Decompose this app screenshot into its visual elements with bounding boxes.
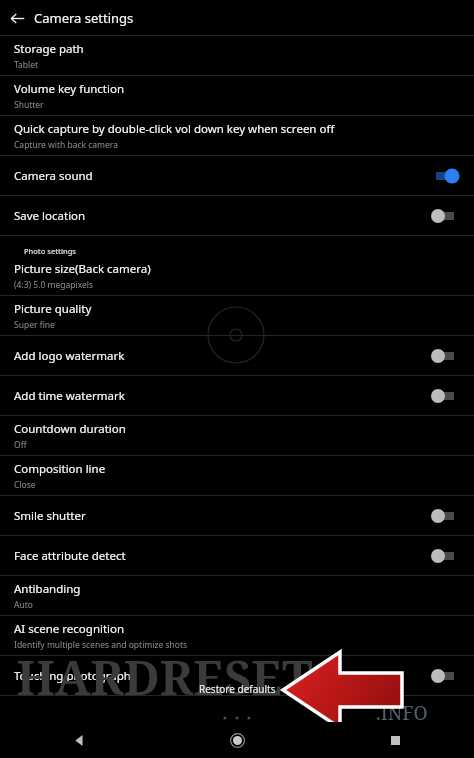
button[interactable]: Smile shutter: [0, 496, 474, 535]
button[interactable]: Restore defaults: [0, 678, 474, 700]
staticText: (4:3) 5.0 megapixels: [14, 279, 94, 291]
staticText: Picture size(Back camera): [14, 261, 151, 277]
button[interactable]: AI scene recognition: [0, 616, 474, 655]
button[interactable]: Antibanding: [0, 576, 474, 615]
button[interactable]: Quick capture by double-click vol down k…: [0, 116, 474, 155]
button[interactable]: Save location: [0, 196, 474, 235]
staticText: Storage path: [14, 41, 84, 57]
staticText: Save location: [14, 208, 86, 224]
button[interactable]: Storage path: [0, 36, 474, 75]
staticText: Restore defaults: [199, 682, 276, 696]
staticText: AI scene recognition: [14, 621, 125, 637]
staticText: Shutter: [14, 99, 44, 111]
staticText: Touching photograph: [14, 668, 131, 684]
button[interactable]: Home: [158, 722, 316, 758]
staticText: Add time watermark: [14, 388, 125, 404]
button[interactable]: Face attribute detect: [0, 536, 474, 575]
staticText: Composition line: [14, 461, 106, 477]
staticText: Countdown duration: [14, 421, 126, 437]
staticText: Off: [14, 439, 27, 451]
staticText: Camera settings: [34, 9, 134, 27]
button[interactable]: Picture size(Back camera): [0, 256, 474, 295]
button[interactable]: Volume key function: [0, 76, 474, 115]
button[interactable]: Composition line: [0, 456, 474, 495]
staticText: Close: [14, 479, 36, 491]
button[interactable]: Add logo watermark: [0, 336, 474, 375]
staticText: Auto: [14, 599, 33, 611]
button[interactable]: Recent apps: [316, 722, 474, 758]
staticText: Smile shutter: [14, 508, 86, 524]
staticText: .INFO: [376, 700, 428, 726]
staticText: Capture with back camera: [14, 139, 118, 151]
staticText: Tablet: [14, 59, 39, 71]
staticText: Quick capture by double-click vol down k…: [14, 121, 335, 137]
button[interactable]: Touching photograph: [0, 656, 474, 695]
button[interactable]: Back: [0, 1, 34, 35]
staticText: Face attribute detect: [14, 548, 126, 564]
staticText: Add logo watermark: [14, 348, 125, 364]
staticText: Volume key function: [14, 81, 125, 97]
button[interactable]: Picture quality: [0, 296, 474, 335]
staticText: Photo settings: [24, 246, 76, 256]
staticText: Picture quality: [14, 301, 92, 317]
staticText: Camera sound: [14, 168, 93, 184]
button[interactable]: Back: [0, 722, 158, 758]
staticText: Super fine: [14, 319, 55, 331]
staticText: Antibanding: [14, 581, 81, 597]
button[interactable]: Camera sound: [0, 156, 474, 195]
staticText: Identify multiple scenes and optimize sh…: [14, 639, 188, 651]
button[interactable]: Countdown duration: [0, 416, 474, 455]
button[interactable]: Add time watermark: [0, 376, 474, 415]
staticText: HARDRESET: [16, 645, 313, 709]
